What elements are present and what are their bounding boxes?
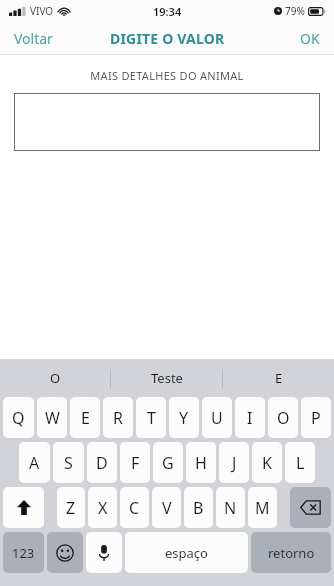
staticText: X xyxy=(98,497,108,519)
staticText: K xyxy=(262,452,272,474)
button[interactable]: A xyxy=(19,442,50,483)
button[interactable]: Backspace xyxy=(290,487,331,528)
staticText: O xyxy=(50,369,61,387)
button[interactable]: E xyxy=(70,397,100,438)
staticText: MAIS DETALHES DO ANIMAL xyxy=(0,68,334,83)
staticText: Voltar xyxy=(14,29,53,48)
staticText: D xyxy=(96,452,108,474)
staticText: I xyxy=(247,407,253,429)
staticText: Y xyxy=(179,407,189,429)
button[interactable]: C xyxy=(120,487,149,528)
staticText: E xyxy=(275,369,283,387)
button[interactable]: G xyxy=(153,442,183,483)
staticText: VIVO xyxy=(30,4,54,18)
button[interactable]: B xyxy=(184,487,213,528)
button[interactable] xyxy=(14,93,320,151)
button[interactable]: Emoji xyxy=(47,532,83,573)
staticText: O xyxy=(277,407,290,429)
staticText: E xyxy=(81,407,90,429)
staticText: espaço xyxy=(165,544,208,562)
staticText: 19:34 xyxy=(153,4,182,19)
staticText: J xyxy=(232,452,237,474)
button[interactable]: K xyxy=(252,442,282,483)
button[interactable]: X xyxy=(88,487,117,528)
button[interactable]: Voltar xyxy=(0,23,67,54)
button[interactable]: D xyxy=(87,442,117,483)
button[interactable]: Z xyxy=(57,487,85,528)
staticText: 79% xyxy=(285,4,305,18)
staticText: G xyxy=(162,452,174,474)
staticText: S xyxy=(64,452,73,474)
staticText: V xyxy=(162,497,172,519)
button[interactable]: Shift xyxy=(3,487,44,528)
button[interactable]: O xyxy=(268,397,298,438)
staticText: R xyxy=(113,407,123,429)
button[interactable]: F xyxy=(120,442,150,483)
button[interactable]: OK xyxy=(286,23,334,54)
button[interactable]: L xyxy=(285,442,315,483)
button[interactable]: N xyxy=(216,487,245,528)
button[interactable]: T xyxy=(136,397,166,438)
staticText: Teste xyxy=(151,369,183,387)
button[interactable]: R xyxy=(103,397,133,438)
button[interactable]: 123 xyxy=(3,532,44,573)
button[interactable]: E xyxy=(223,359,334,397)
staticText: H xyxy=(195,452,207,474)
button[interactable]: O xyxy=(0,359,110,397)
staticText: B xyxy=(193,497,204,519)
button[interactable]: V xyxy=(152,487,181,528)
staticText: U xyxy=(211,407,223,429)
button[interactable]: S xyxy=(53,442,84,483)
button[interactable]: Y xyxy=(169,397,199,438)
button[interactable]: I xyxy=(235,397,265,438)
button[interactable]: H xyxy=(186,442,216,483)
staticText: Q xyxy=(12,407,25,429)
staticText: W xyxy=(45,407,60,429)
staticText: F xyxy=(131,452,140,474)
staticText: OK xyxy=(300,29,320,48)
staticText: C xyxy=(129,497,140,519)
staticText: P xyxy=(311,407,321,429)
button[interactable]: J xyxy=(219,442,249,483)
staticText: N xyxy=(224,497,237,519)
button[interactable]: espaço xyxy=(125,532,248,573)
button[interactable]: U xyxy=(202,397,232,438)
staticText: A xyxy=(29,452,40,474)
button[interactable]: retorno xyxy=(251,532,331,573)
button[interactable]: Teste xyxy=(111,359,222,397)
button[interactable]: Dictation xyxy=(86,532,122,573)
button[interactable]: M xyxy=(248,487,277,528)
staticText: M xyxy=(255,497,270,519)
button[interactable]: P xyxy=(301,397,331,438)
button[interactable]: W xyxy=(37,397,67,438)
staticText: Z xyxy=(66,497,76,519)
staticText: retorno xyxy=(268,544,315,562)
staticText: DIGITE O VALOR xyxy=(110,29,225,48)
staticText: T xyxy=(147,407,156,429)
staticText: 123 xyxy=(12,544,35,562)
staticText: L xyxy=(296,452,305,474)
button[interactable]: Q xyxy=(3,397,34,438)
